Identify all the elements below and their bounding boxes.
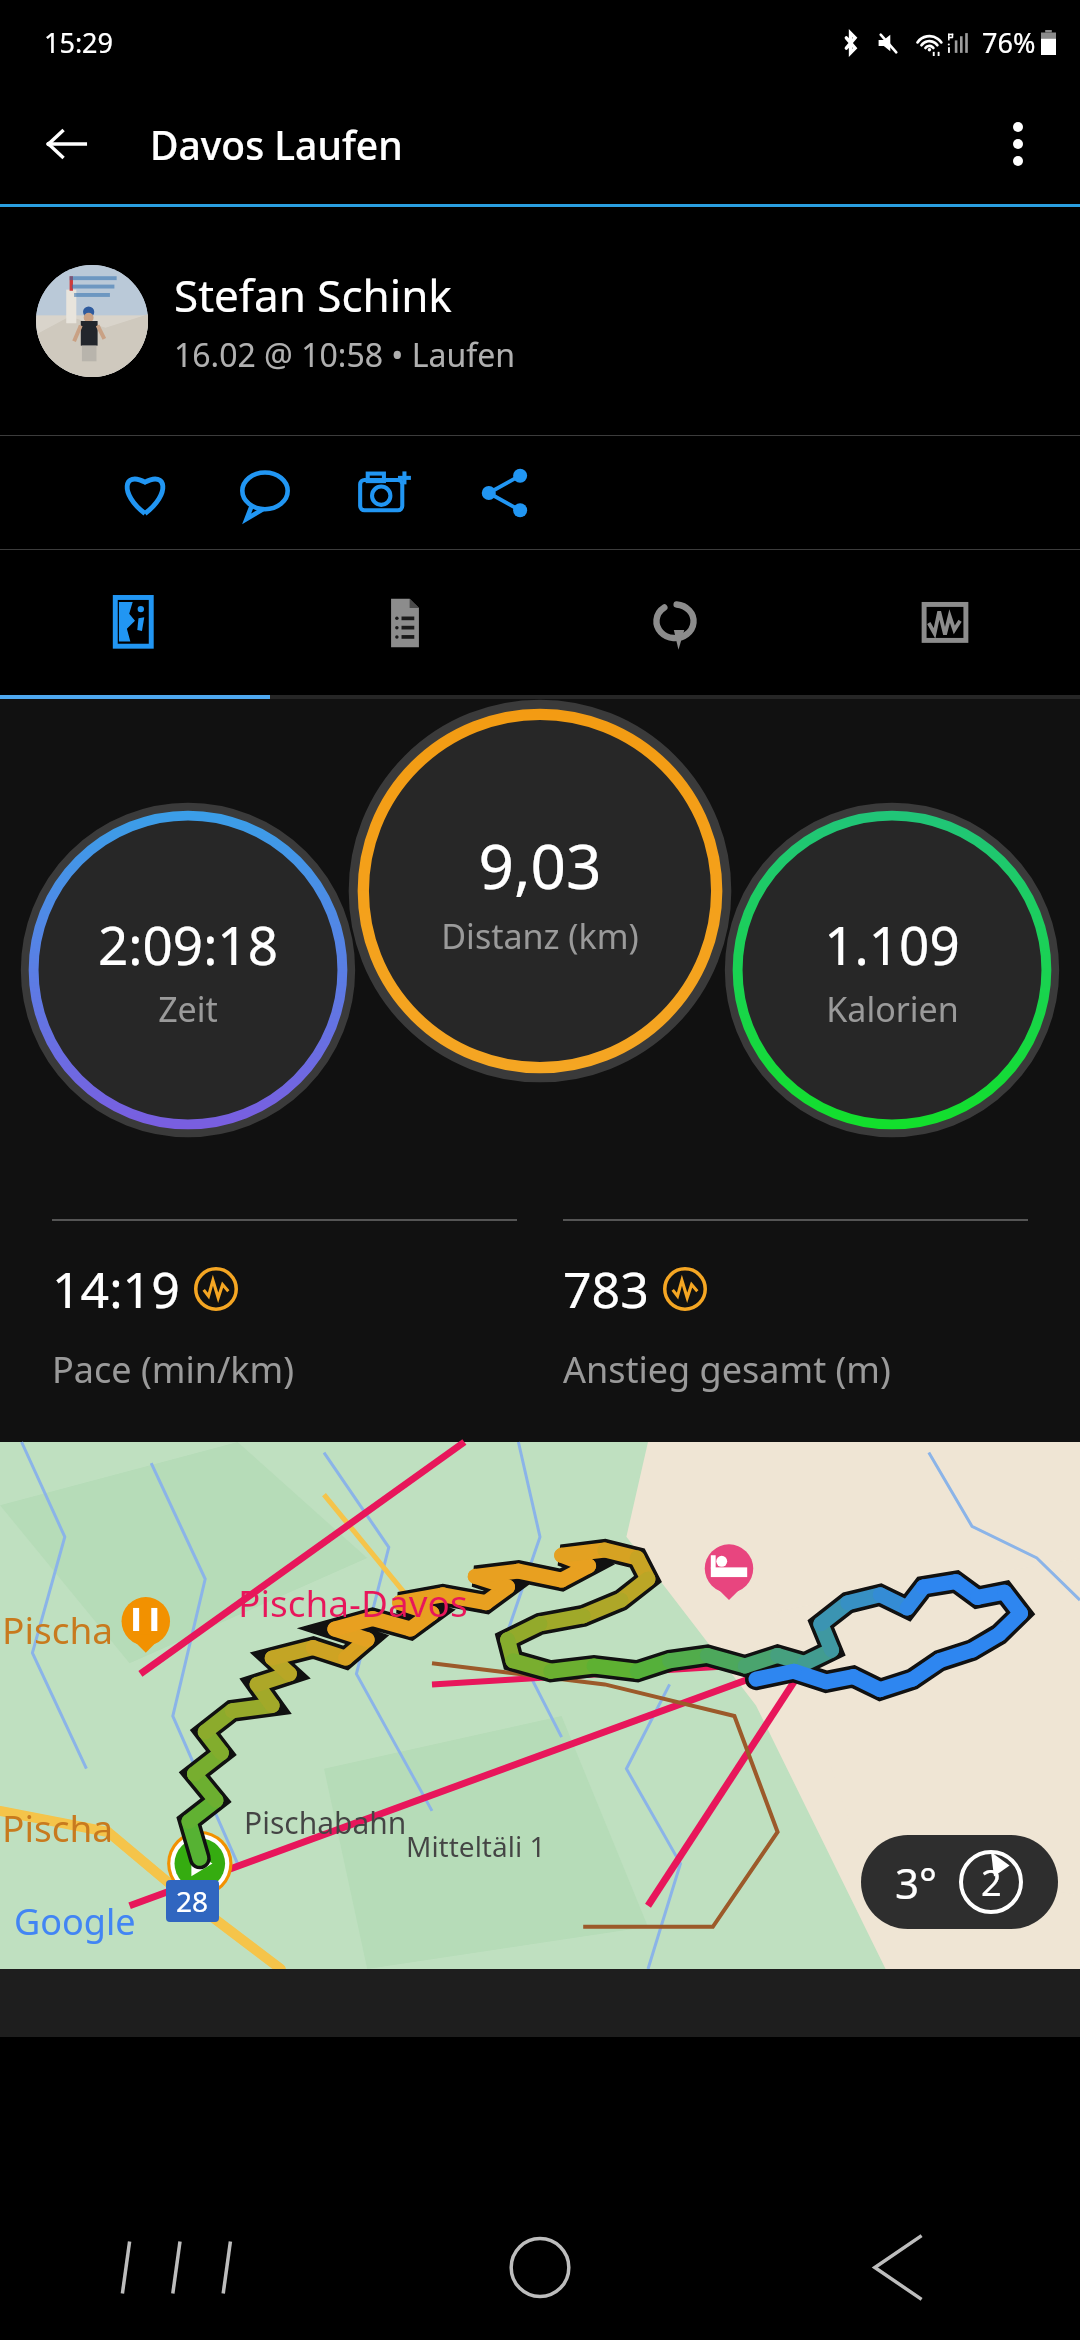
staticText: 2:09:18 xyxy=(98,908,278,980)
button[interactable]: Back xyxy=(720,2195,1080,2340)
staticText: Davos Laufen xyxy=(150,118,403,171)
staticText: 783 xyxy=(563,1255,649,1323)
button[interactable]: Share xyxy=(445,436,565,549)
staticText: Anstieg gesamt (m) xyxy=(563,1345,891,1394)
button[interactable]: Laps xyxy=(540,550,810,695)
button[interactable]: 2:09:18 xyxy=(22,804,354,1136)
button[interactable]: 9,03 xyxy=(350,701,730,1081)
staticText: 9,03 xyxy=(478,823,602,907)
button[interactable]: Add photo xyxy=(325,436,445,549)
button[interactable]: Stefan Schink xyxy=(0,207,1080,435)
button[interactable]: Charts xyxy=(810,550,1080,695)
staticText: Pischabahn xyxy=(244,1802,407,1843)
staticText: 1.109 xyxy=(824,908,960,980)
staticText: 16.02 @ 10:58 • Laufen xyxy=(174,333,515,377)
button[interactable]: More options xyxy=(982,108,1054,180)
button[interactable]: 3° xyxy=(861,1835,1058,1929)
staticText: Pischa xyxy=(2,1802,114,1852)
button[interactable]: 1.109 xyxy=(726,804,1058,1136)
staticText: Pischa xyxy=(2,1604,114,1654)
staticText: 3° xyxy=(895,1854,938,1911)
staticText: Distanz (km) xyxy=(441,913,639,959)
button[interactable]: Recents xyxy=(0,2195,360,2340)
button[interactable]: Details xyxy=(270,550,540,695)
staticText: Google xyxy=(14,1897,136,1946)
staticText: Pace (min/km) xyxy=(52,1345,294,1394)
staticText: 76% xyxy=(982,24,1036,61)
staticText: Mitteltäli 1 xyxy=(406,1827,546,1865)
staticText: 15:29 xyxy=(44,24,114,61)
button[interactable]: Comment xyxy=(205,436,325,549)
button[interactable]: Back xyxy=(30,108,102,180)
staticText: Kalorien xyxy=(826,986,959,1032)
button[interactable]: Map xyxy=(0,550,270,695)
staticText: 14:19 xyxy=(52,1255,180,1323)
staticText: Pischa-Davos xyxy=(238,1577,468,1627)
staticText: 2 xyxy=(981,1858,1002,1907)
button[interactable]: Like xyxy=(85,436,205,549)
button[interactable]: Home xyxy=(360,2195,720,2340)
staticText: Stefan Schink xyxy=(174,265,452,325)
button[interactable]: 783 xyxy=(563,1219,1028,1394)
staticText: 28 xyxy=(176,1882,209,1920)
staticText: Zeit xyxy=(158,986,218,1032)
button[interactable]: 14:19 xyxy=(52,1219,517,1394)
